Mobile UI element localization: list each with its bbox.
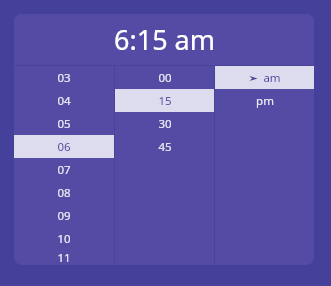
staticText: 30 — [158, 116, 172, 132]
staticText: 15 — [158, 93, 172, 109]
button[interactable]: am — [215, 66, 314, 89]
button[interactable]: pm — [215, 89, 314, 112]
staticText: 07 — [57, 162, 71, 178]
staticText: 09 — [57, 208, 71, 224]
staticText: pm — [256, 93, 274, 109]
button[interactable]: 04 — [14, 89, 114, 112]
other: am selected — [215, 66, 314, 89]
button[interactable]: 30 — [115, 112, 214, 135]
button[interactable]: 07 — [14, 158, 114, 181]
staticText: 06 — [57, 139, 71, 155]
button[interactable]: 15 — [115, 89, 214, 112]
staticText: am — [263, 70, 281, 86]
button[interactable]: 05 — [14, 112, 114, 135]
button[interactable]: 11 — [14, 250, 114, 265]
staticText: 04 — [57, 93, 71, 109]
staticText: 45 — [158, 139, 172, 155]
button[interactable]: 45 — [115, 135, 214, 158]
button[interactable]: 06 — [14, 135, 114, 158]
staticText: 05 — [57, 116, 71, 132]
staticText: 6:15 am — [114, 21, 215, 58]
staticText: 11 — [57, 250, 71, 265]
staticText: 08 — [57, 185, 71, 201]
button[interactable]: 09 — [14, 204, 114, 227]
staticText: 00 — [158, 70, 172, 86]
staticText: 03 — [57, 70, 71, 86]
button[interactable]: 00 — [115, 66, 214, 89]
staticText: 10 — [57, 231, 71, 247]
button[interactable]: 08 — [14, 181, 114, 204]
button[interactable]: 10 — [14, 227, 114, 250]
button[interactable]: 6:15 am — [14, 14, 314, 65]
button[interactable]: 03 — [14, 66, 114, 89]
